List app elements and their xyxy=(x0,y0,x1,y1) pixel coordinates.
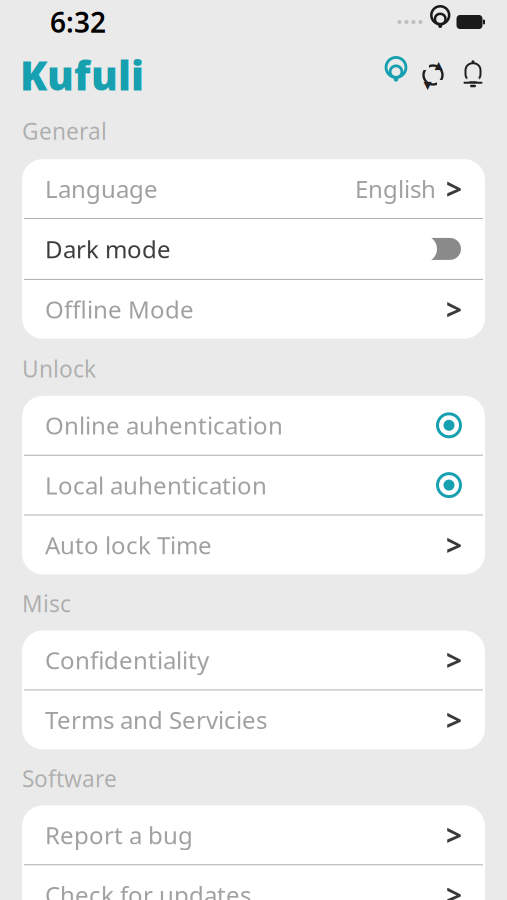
button[interactable]: Auto lock Time xyxy=(22,515,485,574)
button[interactable]: Confidentiality xyxy=(22,630,485,689)
staticText: Language xyxy=(45,173,158,205)
staticText: Software xyxy=(22,763,117,793)
staticText: Offline Mode xyxy=(45,293,194,325)
button[interactable]: Check for updates xyxy=(22,865,485,900)
button[interactable]: Dark mode xyxy=(22,219,485,279)
staticText: Dark mode xyxy=(45,233,171,265)
button[interactable]: Language xyxy=(22,159,485,218)
button[interactable]: Network status xyxy=(379,58,413,92)
staticText: Online auhentication xyxy=(45,409,283,441)
button[interactable]: Local auhentication xyxy=(22,456,485,515)
staticText: Local auhentication xyxy=(45,469,267,501)
staticText: Misc xyxy=(22,588,71,618)
button[interactable]: Sync xyxy=(413,58,453,92)
staticText: ▲ xyxy=(434,59,442,71)
staticText: Terms and Servicies xyxy=(45,704,267,736)
staticText: General xyxy=(22,116,107,146)
staticText: Confidentiality xyxy=(45,644,209,676)
button[interactable]: Offline Mode xyxy=(22,280,485,339)
staticText: ▼ xyxy=(423,79,431,91)
staticText: > xyxy=(446,641,462,679)
staticText: > xyxy=(446,816,462,853)
staticText: Check for updates xyxy=(45,879,251,900)
staticText: > xyxy=(446,701,462,738)
staticText: Unlock xyxy=(22,354,96,384)
staticText: > xyxy=(446,170,462,207)
staticText: > xyxy=(446,526,462,563)
staticText: > xyxy=(446,291,462,328)
button[interactable]: Terms and Servicies xyxy=(22,690,485,749)
staticText: Auto lock Time xyxy=(45,529,212,561)
staticText: 6:32 xyxy=(50,3,106,41)
staticText: Report a bug xyxy=(45,819,193,851)
button[interactable]: Online auhentication xyxy=(22,396,485,455)
staticText: > xyxy=(446,876,462,900)
staticText: Kufuli xyxy=(20,48,144,101)
button[interactable]: Report a bug xyxy=(22,805,485,864)
staticText: English xyxy=(355,173,436,205)
button[interactable]: Notifications xyxy=(453,58,493,92)
